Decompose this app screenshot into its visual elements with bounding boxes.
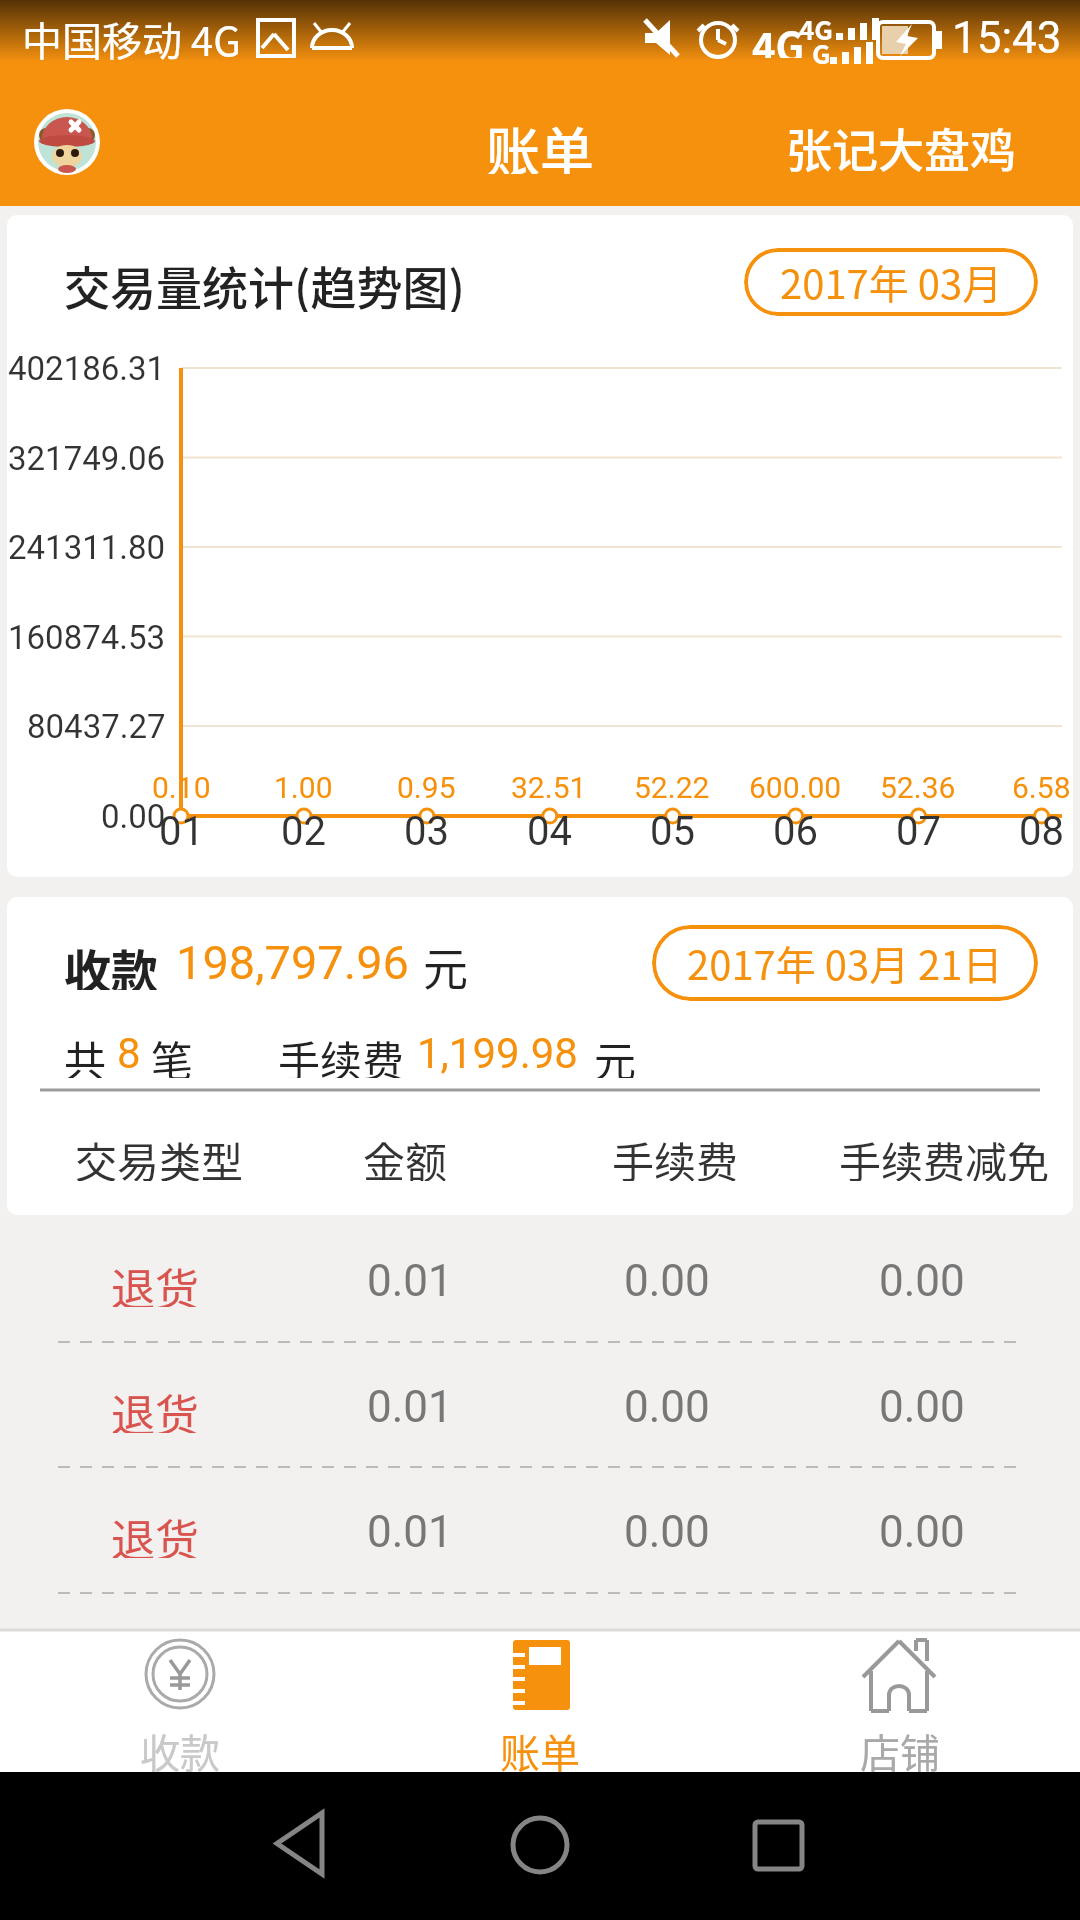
- staticText: 1.00: [274, 770, 333, 804]
- staticText: 退货: [111, 1506, 199, 1558]
- staticText: 收款: [140, 1722, 220, 1772]
- staticText: 金额: [363, 1129, 448, 1181]
- staticText: 交易类型: [75, 1129, 244, 1181]
- staticText: 321749.06: [8, 439, 166, 478]
- staticText: 0.95: [397, 770, 456, 804]
- staticText: 退货: [111, 1255, 199, 1307]
- staticText: 手续费: [278, 1028, 405, 1078]
- staticText: 80437.27: [27, 707, 166, 746]
- staticText: 160874.53: [8, 618, 166, 657]
- staticText: 02: [281, 808, 326, 852]
- staticText: 241311.80: [8, 528, 166, 567]
- staticText: 4G: [799, 10, 833, 40]
- staticText: 账单: [486, 110, 594, 174]
- staticText: 0.01: [367, 1381, 453, 1433]
- staticText: 元: [423, 934, 469, 990]
- staticText: 中国移动 4G: [22, 10, 241, 62]
- staticText: 01: [159, 808, 204, 852]
- staticText: 0.00: [879, 1381, 965, 1433]
- staticText: 52.36: [880, 770, 956, 804]
- staticText: 198,797.96: [176, 935, 409, 990]
- button[interactable]: [34, 109, 100, 175]
- staticText: 1,199.98: [417, 1029, 578, 1078]
- staticText: 402186.31: [8, 349, 166, 388]
- button[interactable]: [0, 1218, 1080, 1344]
- staticText: 4G: [752, 16, 805, 58]
- button[interactable]: 2017年 03月 21日: [652, 925, 1038, 1001]
- staticText: 2017年 03月 21日: [687, 934, 1003, 992]
- staticText: 04: [527, 808, 572, 852]
- button[interactable]: 账单: [360, 1631, 720, 1772]
- staticText: 600.00: [749, 770, 842, 804]
- staticText: 手续费减免: [839, 1129, 1050, 1181]
- staticText: 店铺: [860, 1722, 940, 1772]
- staticText: 手续费: [612, 1129, 739, 1181]
- staticText: 交易量统计(趋势图): [64, 252, 465, 312]
- staticText: 笔: [151, 1028, 194, 1078]
- staticText: 元: [594, 1028, 637, 1078]
- staticText: 52.22: [634, 770, 710, 804]
- staticText: 03: [404, 808, 449, 852]
- staticText: 共: [64, 1028, 107, 1078]
- button[interactable]: 店铺: [720, 1631, 1080, 1772]
- staticText: 05: [650, 808, 695, 852]
- staticText: 0.00: [624, 1381, 710, 1433]
- staticText: 8: [117, 1029, 141, 1078]
- staticText: 0.00: [101, 797, 166, 836]
- staticText: 2017年 03月: [780, 253, 1003, 311]
- button[interactable]: 收款: [0, 1631, 360, 1772]
- staticText: 张记大盘鸡: [786, 114, 1016, 172]
- button[interactable]: [0, 1469, 1080, 1595]
- button[interactable]: [0, 1344, 1080, 1470]
- staticText: 0.00: [879, 1506, 965, 1558]
- staticText: 6.58: [1012, 770, 1071, 804]
- staticText: 06: [773, 808, 818, 852]
- staticText: 0.00: [624, 1506, 710, 1558]
- button[interactable]: 2017年 03月: [744, 248, 1038, 316]
- staticText: 32.51: [511, 770, 587, 804]
- staticText: 15:43: [952, 12, 1062, 64]
- staticText: 07: [896, 808, 941, 852]
- staticText: 08: [1019, 808, 1064, 852]
- staticText: 0.01: [367, 1506, 453, 1558]
- staticText: 0.01: [367, 1255, 453, 1307]
- staticText: 账单: [500, 1722, 580, 1772]
- staticText: 收款: [64, 934, 158, 990]
- staticText: 0.00: [624, 1255, 710, 1307]
- staticText: 退货: [111, 1381, 199, 1433]
- staticText: 0.10: [152, 770, 211, 804]
- staticText: G: [812, 34, 831, 64]
- staticText: 0.00: [879, 1255, 965, 1307]
